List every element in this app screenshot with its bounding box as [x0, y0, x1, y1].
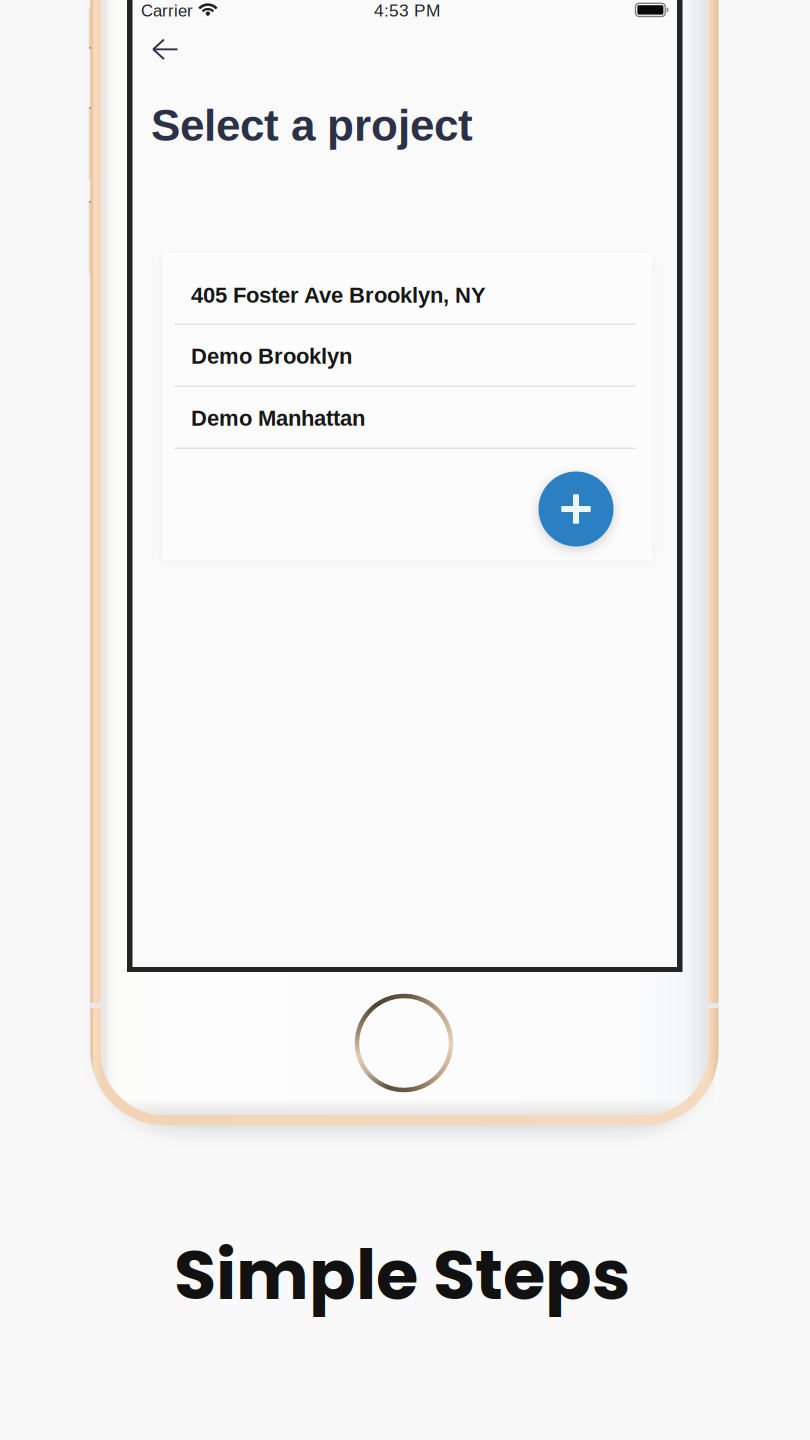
- staticText: Demo Manhattan: [191, 406, 365, 430]
- staticText: Simple Steps: [174, 1227, 630, 1323]
- button[interactable]: Demo Brooklyn: [162, 325, 652, 387]
- button[interactable]: Back: [144, 32, 191, 67]
- button[interactable]: Demo Manhattan: [162, 387, 652, 449]
- staticText: Select a project: [151, 101, 473, 150]
- staticText: 4:53 PM: [374, 1, 440, 20]
- staticText: Demo Brooklyn: [191, 344, 352, 368]
- staticText: 405 Foster Ave Brooklyn, NY: [191, 283, 486, 307]
- button[interactable]: Add project: [538, 471, 613, 546]
- staticText: Carrier: [141, 1, 193, 20]
- button[interactable]: 405 Foster Ave Brooklyn, NY: [162, 265, 652, 325]
